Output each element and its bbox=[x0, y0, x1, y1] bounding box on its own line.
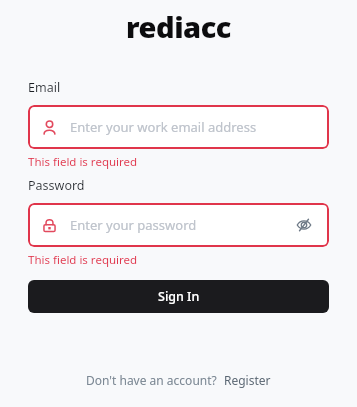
button[interactable]: Enter your work email address bbox=[28, 105, 329, 149]
staticText: Sign In bbox=[158, 288, 200, 305]
button[interactable]: Toggle password visibility bbox=[293, 214, 315, 236]
staticText: Don't have an account? bbox=[86, 372, 217, 388]
button[interactable]: Register bbox=[224, 372, 271, 388]
staticText: This field is required bbox=[28, 154, 138, 170]
staticText: Enter your work email address bbox=[70, 118, 315, 136]
button[interactable]: Sign In bbox=[28, 280, 329, 313]
button[interactable]: Enter your password bbox=[28, 203, 329, 247]
staticText: Email bbox=[28, 79, 61, 96]
staticText: Password bbox=[28, 177, 85, 194]
staticText: rediacc bbox=[126, 7, 231, 46]
staticText: Enter your password bbox=[70, 216, 293, 234]
staticText: Register bbox=[224, 372, 271, 388]
staticText: This field is required bbox=[28, 252, 138, 268]
